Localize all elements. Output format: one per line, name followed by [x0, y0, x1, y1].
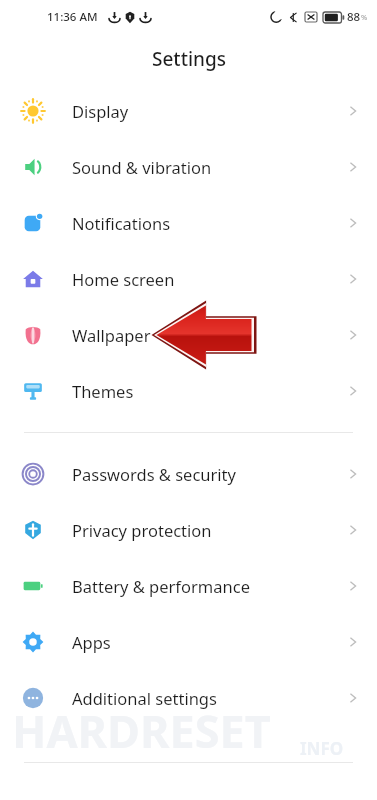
staticText: Themes: [72, 380, 134, 402]
staticText: Wallpaper: [72, 324, 151, 346]
staticText: 88: [347, 9, 361, 25]
staticText: Display: [72, 100, 129, 122]
staticText: Battery & performance: [72, 575, 250, 597]
button[interactable]: Wallpaper: [0, 307, 377, 363]
staticText: Notifications: [72, 212, 171, 234]
button[interactable]: Additional settings: [0, 670, 377, 726]
staticText: INFO: [300, 737, 344, 760]
button[interactable]: Sound & vibration: [0, 139, 377, 195]
staticText: Additional settings: [72, 687, 217, 709]
staticText: Privacy protection: [72, 519, 212, 541]
staticText: Sound & vibration: [72, 156, 212, 178]
button[interactable]: Apps: [0, 614, 377, 670]
staticText: HARDRESET: [12, 700, 271, 761]
button[interactable]: Passwords & security: [0, 446, 377, 502]
button[interactable]: Battery & performance: [0, 558, 377, 614]
button[interactable]: Home screen: [0, 251, 377, 307]
button[interactable]: Display: [0, 83, 377, 139]
button[interactable]: Privacy protection: [0, 502, 377, 558]
staticText: Passwords & security: [72, 463, 236, 485]
staticText: Home screen: [72, 268, 175, 290]
staticText: Apps: [72, 631, 111, 653]
button[interactable]: Themes: [0, 363, 377, 419]
button[interactable]: Notifications: [0, 195, 377, 251]
staticText: %: [361, 12, 368, 22]
staticText: Settings: [152, 46, 226, 72]
staticText: 11:36 AM: [47, 9, 98, 25]
